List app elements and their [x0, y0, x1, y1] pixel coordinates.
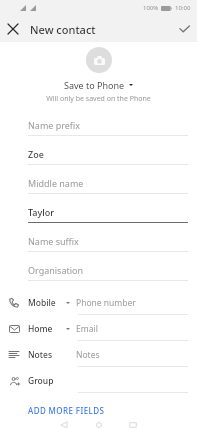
staticText: Home: [28, 323, 53, 335]
staticText: ADD MORE FIELDS: [28, 405, 105, 416]
staticText: Taylor: [28, 206, 54, 218]
button[interactable]: Taylor: [0, 199, 197, 228]
button[interactable]: Name suffix: [0, 228, 197, 257]
button[interactable]: Add photo: [86, 47, 112, 73]
staticText: New contact: [30, 22, 96, 37]
staticText: Phone number: [76, 297, 136, 309]
staticText: Notes: [76, 349, 100, 361]
staticText: Mobile: [28, 297, 56, 309]
button[interactable]: Zoe: [0, 141, 197, 170]
button[interactable]: Middle name: [0, 170, 197, 199]
staticText: Save to Phone: [64, 79, 125, 91]
staticText: Group: [28, 375, 54, 387]
button[interactable]: Notes: [0, 344, 197, 370]
staticText: 10:00: [175, 4, 191, 12]
staticText: Name suffix: [28, 235, 79, 247]
button[interactable]: Save: [171, 16, 197, 42]
button[interactable]: Home: [0, 318, 197, 344]
button[interactable]: ADD MORE FIELDS: [0, 402, 197, 422]
staticText: Name prefix: [28, 119, 81, 131]
button[interactable]: Mobile: [0, 292, 197, 318]
button[interactable]: Home: [82, 422, 116, 428]
staticText: Will only be saved on the Phone: [46, 94, 151, 104]
staticText: Middle name: [28, 177, 84, 189]
staticText: Notes: [28, 349, 53, 361]
staticText: Email: [76, 323, 98, 335]
button[interactable]: Organisation: [0, 257, 197, 286]
button[interactable]: Close: [0, 16, 26, 42]
button[interactable]: Name prefix: [0, 112, 197, 141]
button[interactable]: Group: [0, 370, 197, 396]
staticText: Zoe: [28, 148, 44, 160]
staticText: Organisation: [28, 264, 84, 276]
staticText: 100%: [143, 4, 159, 12]
button[interactable]: Save to Phone: [60, 78, 137, 92]
button[interactable]: Back: [48, 422, 82, 428]
button[interactable]: Recents: [116, 422, 150, 428]
